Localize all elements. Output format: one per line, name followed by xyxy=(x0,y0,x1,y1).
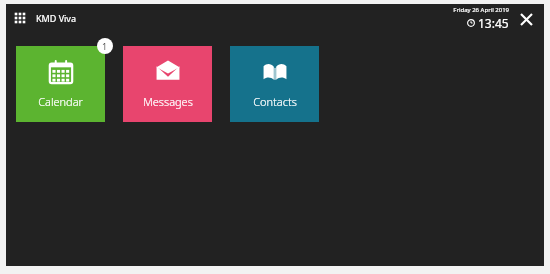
staticText: Messages xyxy=(143,94,193,109)
button[interactable]: Messages xyxy=(123,46,212,122)
staticText: Contacts xyxy=(253,94,297,109)
button[interactable]: Apps xyxy=(12,10,76,26)
button[interactable]: Close xyxy=(516,9,536,29)
staticText: Calendar xyxy=(38,94,83,109)
other: Apps xyxy=(12,10,28,26)
staticText: Friday 26 April 2019 xyxy=(453,6,509,14)
button[interactable]: Contacts xyxy=(230,46,319,122)
staticText: KMD Viva xyxy=(36,12,76,24)
button[interactable]: Calendar xyxy=(16,46,105,122)
staticText: 13:45 xyxy=(478,15,509,31)
staticText: 1 xyxy=(102,40,108,52)
